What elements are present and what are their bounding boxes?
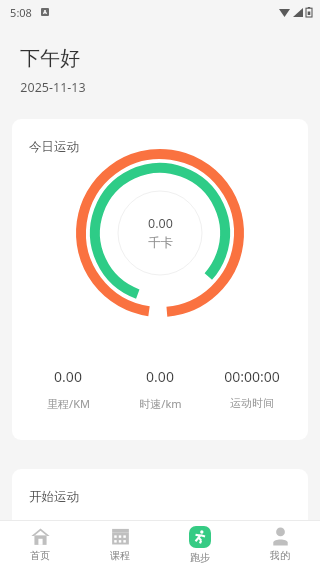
button[interactable]: 今日运动 (12, 119, 308, 440)
staticText: 下午好 (20, 46, 80, 71)
staticText: 千卡 (148, 235, 173, 251)
staticText: 5:08 (10, 5, 32, 20)
staticText: 跑步 (190, 551, 210, 564)
staticText: A (43, 9, 47, 16)
staticText: 课程 (110, 549, 130, 562)
staticText: 时速/km (139, 396, 182, 411)
button[interactable]: 我的 (240, 520, 320, 569)
staticText: 0.00 (148, 215, 173, 232)
staticText: 开始运动 (29, 489, 79, 505)
staticText: 2025-11-13 (20, 79, 86, 96)
button[interactable]: 首页 (0, 520, 80, 569)
staticText: 我的 (270, 549, 290, 562)
staticText: 0.00 (54, 367, 82, 386)
staticText: 里程/KM (47, 396, 90, 411)
button[interactable]: 跑步 (160, 520, 240, 569)
staticText: 0.00 (146, 367, 174, 386)
staticText: 运动时间 (230, 396, 274, 410)
button[interactable]: 课程 (80, 520, 160, 569)
button[interactable]: 开始运动 (12, 469, 308, 559)
staticText: 今日运动 (29, 139, 79, 155)
staticText: 00:00:00 (224, 367, 280, 386)
staticText: 首页 (30, 549, 50, 562)
